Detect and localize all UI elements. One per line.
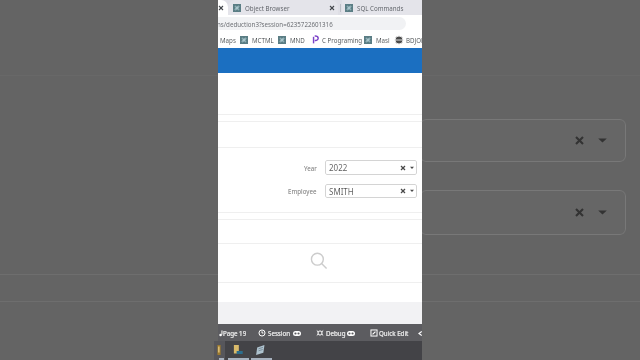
button[interactable]: Close tab: [218, 0, 228, 15]
button[interactable]: Object Browser: [228, 0, 338, 15]
button[interactable]: Masl: [364, 31, 390, 48]
other: Toggle: [293, 331, 301, 336]
other: Open list: [597, 135, 608, 146]
staticText: 2022: [329, 162, 348, 173]
staticText: Session: [268, 329, 290, 337]
button[interactable]: ns/deduction3?session=6235722601316: [218, 17, 406, 30]
staticText: Object Browser: [245, 4, 290, 12]
other: Clear value: [575, 208, 584, 217]
button[interactable]: [218, 324, 246, 342]
staticText: SQL Commands: [357, 4, 404, 12]
staticText: ns/deduction3?session=6235722601316: [218, 20, 333, 28]
button[interactable]: 2022: [325, 160, 417, 175]
button[interactable]: [255, 345, 266, 355]
button[interactable]: MND: [278, 31, 305, 48]
staticText: MCTML: [252, 36, 274, 44]
button[interactable]: MCTML: [240, 31, 274, 48]
button[interactable]: Clear value: [420, 119, 626, 162]
button[interactable]: Close tab: [327, 0, 337, 15]
other: Close tab: [330, 6, 334, 10]
other: Search: [310, 252, 328, 270]
staticText: Debug: [326, 329, 346, 337]
button[interactable]: SMITH: [325, 184, 417, 198]
button[interactable]: C Programing: [311, 31, 363, 48]
other: Clear: [401, 166, 405, 170]
other: Open list: [410, 166, 414, 170]
staticText: BDJOE: [406, 36, 422, 44]
button[interactable]: BDJOE: [395, 31, 422, 48]
staticText: Year: [304, 164, 317, 172]
button[interactable]: Search: [310, 252, 328, 270]
button[interactable]: [217, 345, 221, 355]
other: Toggle: [347, 331, 355, 336]
other: Clear: [401, 189, 405, 193]
button[interactable]: Maps: [220, 31, 236, 48]
button[interactable]: Clear value: [420, 190, 626, 235]
staticText: Quick Edit: [379, 329, 409, 337]
button[interactable]: Close tab: [218, 0, 226, 15]
button[interactable]: [316, 324, 356, 342]
button[interactable]: [370, 324, 411, 342]
staticText: Page 19: [223, 329, 247, 337]
staticText: Employee: [288, 187, 317, 195]
staticText: SMITH: [329, 186, 354, 197]
other: Close tab: [219, 6, 223, 10]
staticText: Maps: [220, 36, 236, 44]
other: Open list: [597, 207, 608, 218]
button[interactable]: Collapse developer toolbar: [417, 324, 422, 342]
staticText: MND: [290, 36, 305, 44]
other: Open list: [410, 189, 414, 193]
button[interactable]: [258, 324, 302, 342]
button[interactable]: SQL Commands: [342, 0, 422, 15]
button[interactable]: [233, 345, 244, 355]
staticText: Masl: [376, 36, 390, 44]
other: Clear value: [575, 136, 584, 145]
staticText: C Programing: [322, 36, 363, 44]
